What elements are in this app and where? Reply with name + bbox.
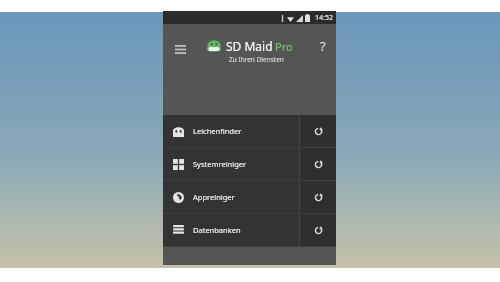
button[interactable]: Appreiniger — [163, 181, 336, 213]
staticText: Zu Ihren Diensten — [229, 55, 284, 64]
staticText: Appreiniger — [193, 192, 235, 202]
button[interactable]: Leichenfinder — [163, 115, 299, 147]
staticText: Leichenfinder — [193, 126, 242, 136]
button[interactable]: Systemreiniger — [163, 148, 336, 180]
button[interactable]: Leichenfinder — [163, 115, 336, 147]
button[interactable]: Refresh Datenbanken — [300, 214, 336, 246]
staticText: SD Maid — [226, 38, 273, 54]
button[interactable]: Refresh Systemreiniger — [300, 148, 336, 180]
staticText: ? — [320, 37, 326, 55]
button[interactable]: Refresh Appreiniger — [300, 181, 336, 213]
button[interactable]: Appreiniger — [163, 181, 299, 213]
staticText: Systemreiniger — [193, 159, 247, 169]
button[interactable]: Systemreiniger — [163, 148, 299, 180]
button[interactable]: Help — [313, 36, 333, 56]
staticText: Pro — [275, 39, 293, 54]
button[interactable]: Refresh Leichenfinder — [300, 115, 336, 147]
staticText: 14:52 — [315, 13, 333, 23]
button[interactable]: Datenbanken — [163, 214, 299, 246]
button[interactable]: Open navigation menu — [169, 38, 191, 60]
staticText: Datenbanken — [193, 225, 241, 235]
button[interactable]: Datenbanken — [163, 214, 336, 246]
